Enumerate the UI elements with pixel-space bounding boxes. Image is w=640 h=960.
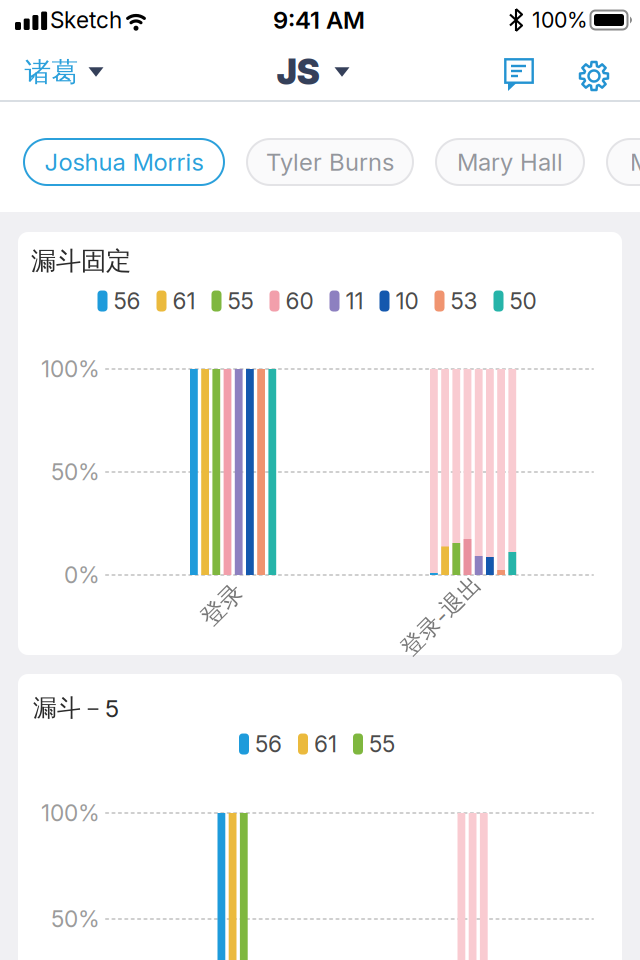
- staticText: JS: [276, 52, 320, 92]
- staticText: 登录-退出: [390, 602, 492, 630]
- staticText: 100%: [532, 7, 588, 33]
- staticText: 61: [314, 731, 337, 757]
- staticText: 100%: [41, 356, 100, 382]
- staticText: 53: [450, 288, 477, 314]
- staticText: 50%: [51, 459, 100, 485]
- staticText: Sketch: [50, 7, 122, 33]
- button[interactable]: Mary Hall: [436, 139, 584, 185]
- button[interactable]: Joshua Morris: [24, 139, 224, 185]
- staticText: 56: [255, 731, 282, 757]
- staticText: Michael Fox: [630, 148, 640, 176]
- button[interactable]: Tyler Burns: [247, 139, 413, 185]
- button[interactable]: [577, 59, 611, 93]
- staticText: 56: [113, 288, 140, 314]
- staticText: 100%: [41, 800, 100, 826]
- staticText: 10: [395, 288, 418, 314]
- button[interactable]: 诸葛: [24, 56, 103, 88]
- staticText: 11: [345, 288, 363, 314]
- staticText: Tyler Burns: [266, 148, 394, 176]
- staticText: 50%: [51, 906, 100, 932]
- staticText: 漏斗－5: [33, 693, 119, 723]
- staticText: 61: [172, 288, 195, 314]
- button[interactable]: Michael Fox: [607, 139, 640, 185]
- staticText: 60: [285, 288, 313, 314]
- staticText: Mary Hall: [457, 148, 563, 176]
- staticText: 诸葛: [24, 56, 78, 88]
- button[interactable]: JS: [276, 52, 349, 92]
- staticText: 55: [369, 731, 395, 757]
- staticText: 0%: [64, 562, 100, 588]
- staticText: 50: [509, 288, 536, 314]
- staticText: 55: [227, 288, 253, 314]
- staticText: Joshua Morris: [44, 148, 203, 176]
- staticText: 登录: [198, 590, 246, 620]
- staticText: 漏斗固定: [31, 245, 131, 276]
- button[interactable]: [504, 58, 534, 92]
- staticText: 9:41 AM: [273, 6, 365, 34]
